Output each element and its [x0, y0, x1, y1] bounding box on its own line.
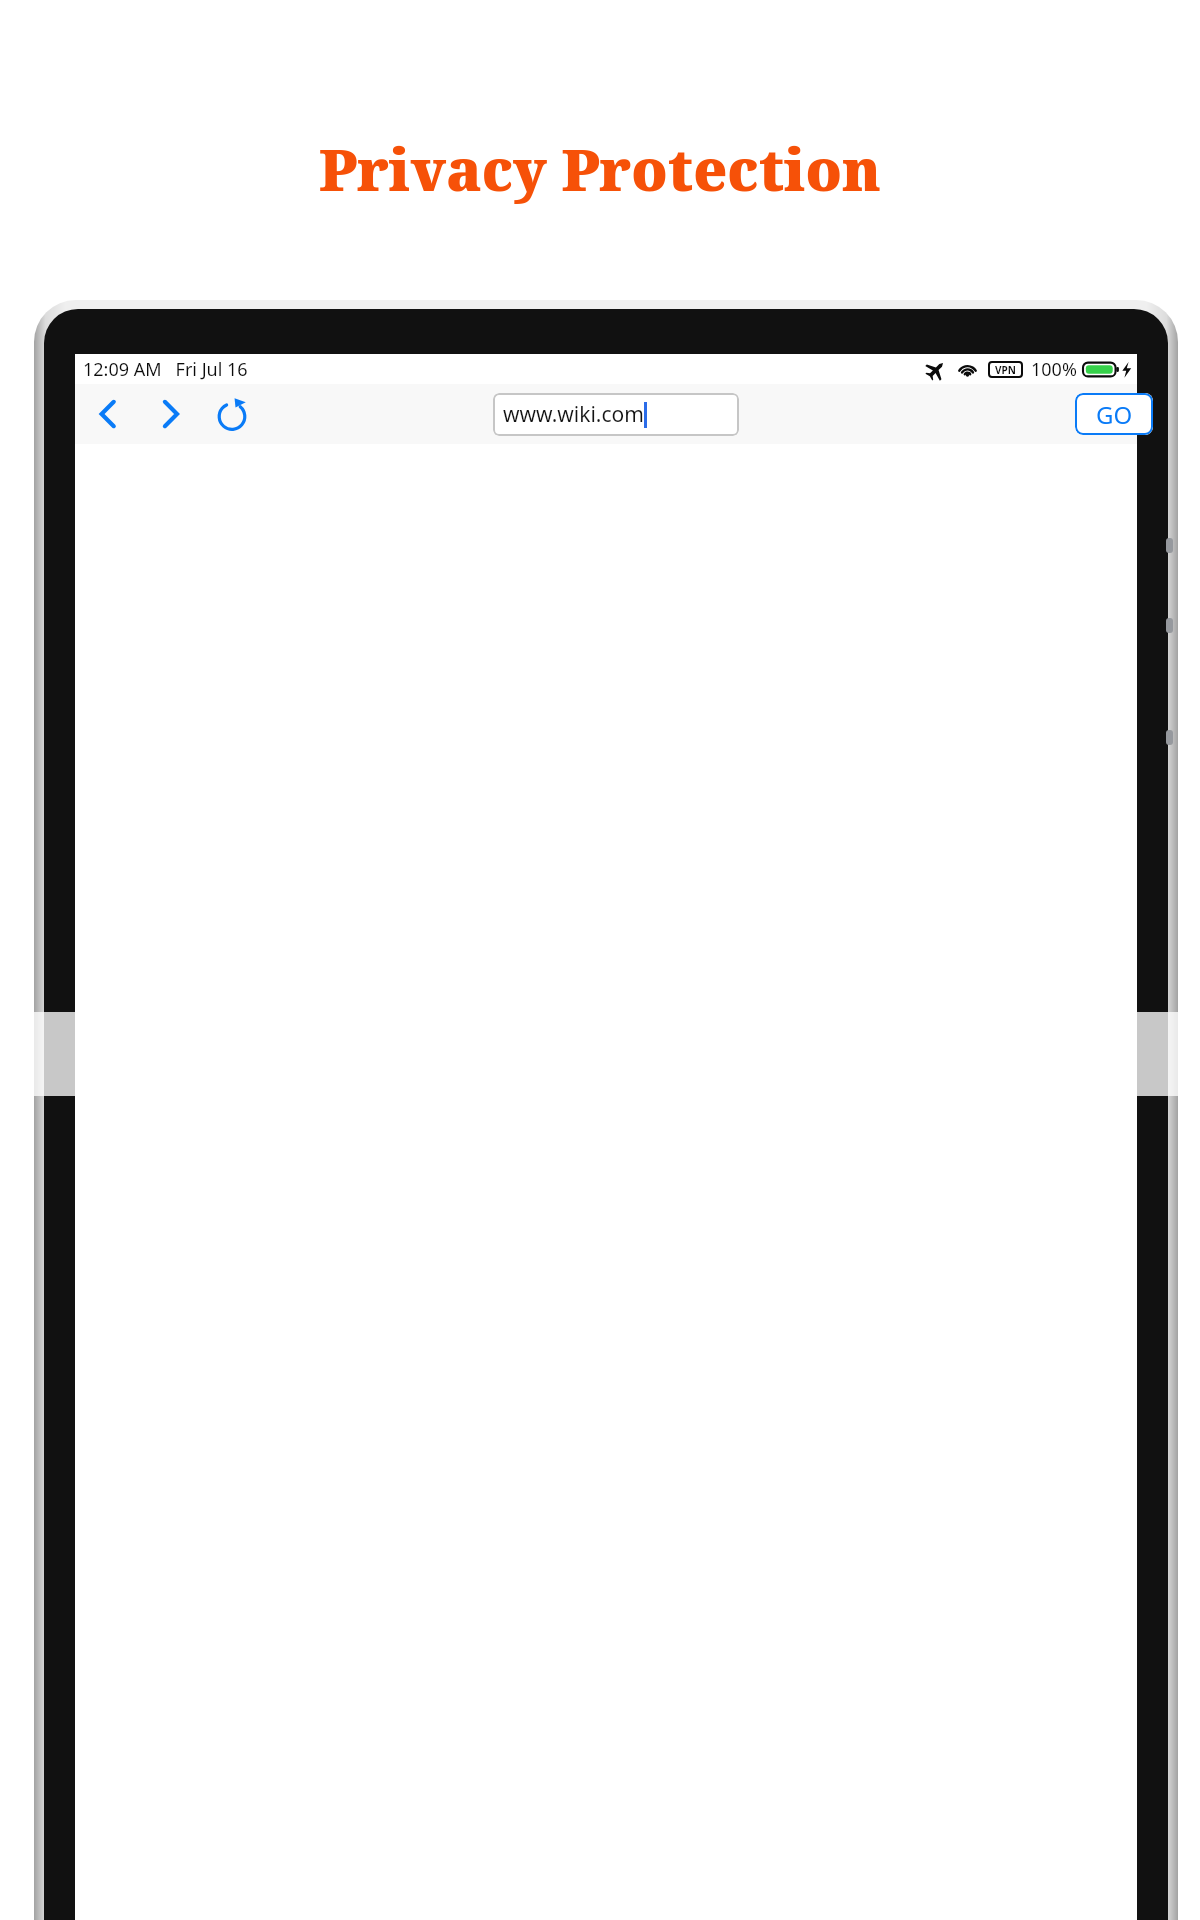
button[interactable]: www.wiki.com — [493, 393, 739, 436]
staticText: 12:09 AM Fri Jul 16 — [83, 357, 248, 382]
staticText: 100% — [1031, 357, 1077, 382]
staticText: www.wiki.com — [503, 400, 644, 429]
staticText: Privacy Protection — [0, 130, 1200, 208]
button[interactable]: Back — [85, 391, 131, 437]
button[interactable]: GO — [1075, 393, 1153, 435]
button[interactable]: Reload — [209, 391, 255, 437]
staticText: GO — [1096, 398, 1133, 431]
button[interactable]: Forward — [147, 391, 193, 437]
staticText: VPN — [995, 363, 1016, 377]
